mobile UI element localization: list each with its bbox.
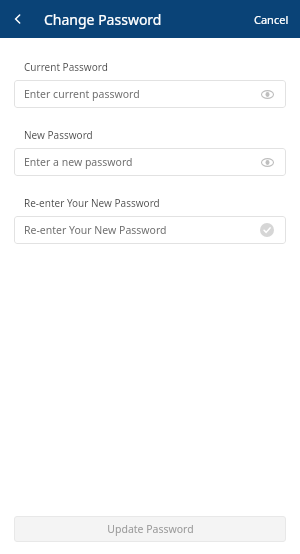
staticText: Update Password bbox=[107, 522, 194, 536]
staticText: Current Password bbox=[24, 60, 108, 74]
staticText: Enter a new password bbox=[24, 155, 258, 169]
button[interactable]: Show password bbox=[258, 153, 276, 171]
staticText: New Password bbox=[24, 128, 93, 142]
staticText: Re-enter Your New Password bbox=[24, 223, 258, 237]
button[interactable]: Cancel bbox=[243, 0, 300, 38]
button[interactable]: Passwords match bbox=[258, 221, 276, 239]
staticText: Cancel bbox=[254, 12, 289, 27]
button[interactable]: Re-enter Your New Password bbox=[14, 216, 286, 244]
staticText: Enter current password bbox=[24, 87, 258, 101]
staticText: Re-enter Your New Password bbox=[24, 196, 160, 210]
button[interactable]: Enter a new password bbox=[14, 148, 286, 176]
staticText: Change Password bbox=[44, 10, 162, 29]
button[interactable]: Update Password bbox=[14, 516, 286, 542]
button[interactable]: Show password bbox=[258, 85, 276, 103]
button[interactable]: Enter current password bbox=[14, 80, 286, 108]
button[interactable]: Back bbox=[0, 0, 36, 38]
